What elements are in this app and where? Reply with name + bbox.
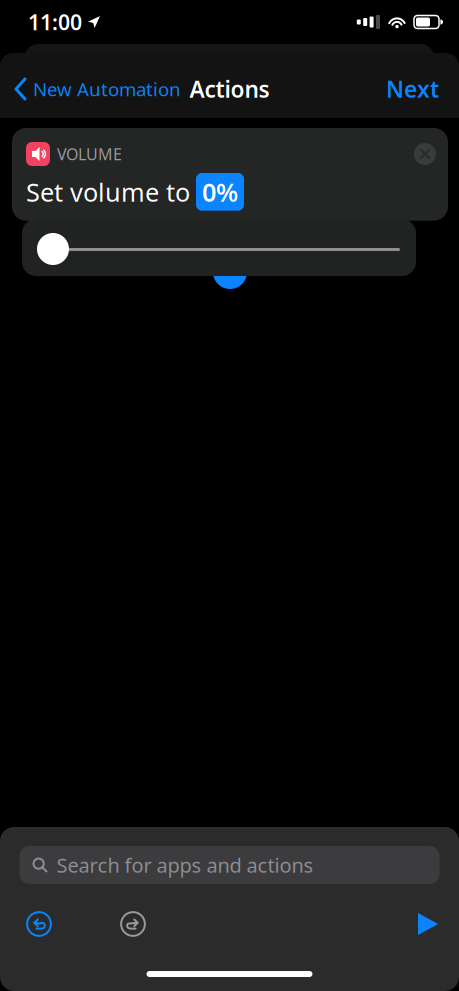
staticText: 0% <box>202 175 238 209</box>
staticText: 11:00 <box>28 8 82 36</box>
staticText: VOLUME <box>57 143 122 165</box>
button[interactable]: Run <box>408 904 448 944</box>
button[interactable]: Redo <box>111 902 155 946</box>
staticText: Set volume to <box>26 175 190 209</box>
button[interactable]: Next <box>386 62 459 116</box>
button[interactable]: New Automation <box>0 65 181 113</box>
staticText: Actions <box>189 74 269 104</box>
staticText: Search for apps and actions <box>56 852 313 878</box>
staticText: New Automation <box>33 77 181 101</box>
staticText: Next <box>386 74 439 104</box>
button[interactable]: Search for apps and actions <box>19 846 439 884</box>
button[interactable]: Remove action <box>414 143 436 165</box>
button[interactable]: Undo <box>17 902 61 946</box>
